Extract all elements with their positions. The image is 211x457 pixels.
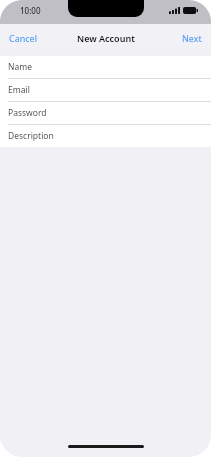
staticText: Email	[8, 84, 30, 96]
staticText: Cancel	[9, 32, 38, 44]
staticText: Description	[8, 130, 54, 142]
staticText: Password	[8, 107, 47, 119]
staticText: Next	[182, 32, 202, 44]
staticText: 10:00	[20, 5, 41, 16]
button[interactable]: Next	[173, 27, 211, 49]
staticText: New Account	[77, 32, 135, 44]
staticText: Name	[8, 61, 32, 73]
button[interactable]: Cancel	[0, 27, 47, 49]
button[interactable]: Password	[0, 102, 211, 124]
button[interactable]: Name	[0, 56, 211, 78]
button[interactable]: Description	[0, 125, 211, 147]
button[interactable]: Email	[0, 79, 211, 101]
